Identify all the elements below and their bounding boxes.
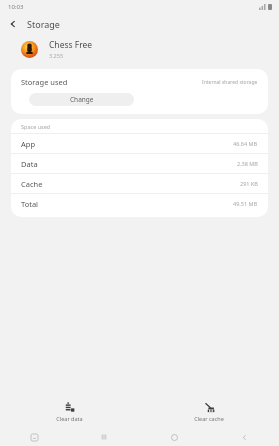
button[interactable]: Cache xyxy=(11,173,268,193)
staticText: Clear cache xyxy=(194,415,224,422)
staticText: 3.255 xyxy=(49,52,64,59)
staticText: Internal shared storage xyxy=(202,79,258,86)
staticText: Chess Free xyxy=(49,39,93,51)
button[interactable]: Clear data xyxy=(0,395,139,428)
staticText: Data xyxy=(21,159,38,169)
button[interactable]: Recents xyxy=(69,428,139,446)
staticText: 49.51 MB xyxy=(233,200,258,207)
button[interactable]: Chess Free xyxy=(0,34,279,64)
staticText: Clear data xyxy=(56,415,83,422)
staticText: Total xyxy=(21,199,39,209)
button[interactable]: Back xyxy=(4,15,22,33)
button[interactable]: Total xyxy=(11,193,268,213)
staticText: 46.64 MB xyxy=(233,140,258,147)
staticText: Storage used xyxy=(21,77,68,87)
button[interactable]: Data xyxy=(11,153,268,173)
staticText: 291 KB xyxy=(240,180,258,187)
staticText: Storage xyxy=(27,18,60,30)
staticText: 2.38 MB xyxy=(237,160,258,167)
staticText: App xyxy=(21,139,36,149)
staticText: Space used xyxy=(21,123,51,130)
button[interactable]: Change xyxy=(29,93,134,106)
staticText: Change xyxy=(70,95,94,104)
button[interactable]: Clear cache xyxy=(139,395,279,428)
staticText: Cache xyxy=(21,179,43,189)
button[interactable]: Home xyxy=(139,428,209,446)
button[interactable]: Screenshot xyxy=(0,428,69,446)
button[interactable]: App xyxy=(11,133,268,153)
staticText: 10:03 xyxy=(8,3,24,11)
